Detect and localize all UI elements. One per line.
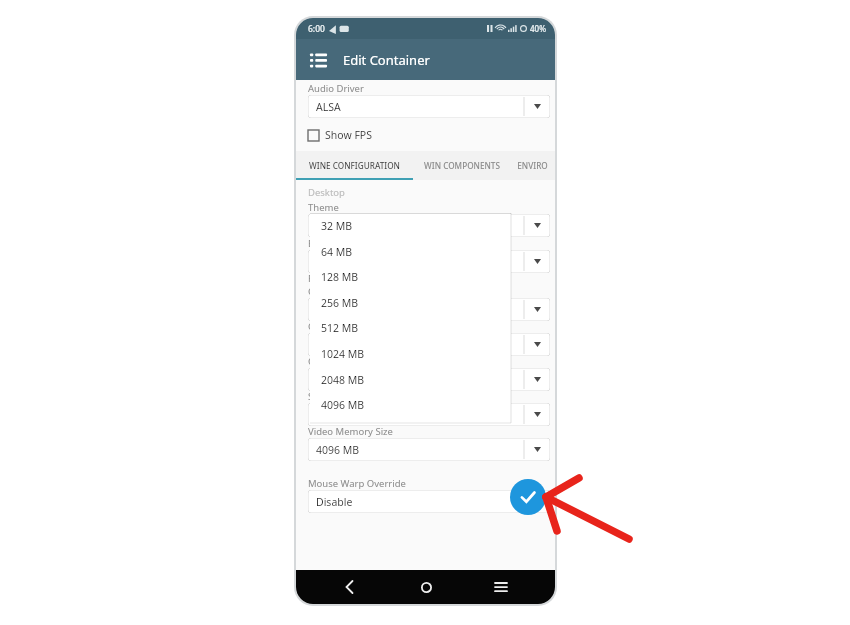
staticText: 1024 MB (321, 347, 365, 361)
staticText: R (308, 272, 314, 285)
button[interactable]: 64 MB (310, 239, 511, 265)
staticText: 40% (530, 23, 546, 34)
staticText: Audio Driver (308, 82, 364, 95)
staticText: Show FPS (325, 128, 372, 142)
staticText: O (308, 355, 316, 368)
button[interactable]: WIN COMPONENTS (413, 151, 510, 180)
staticText: 128 MB (321, 270, 359, 284)
staticText: C (308, 285, 315, 298)
button[interactable] (308, 403, 550, 426)
staticText: 2048 MB (321, 373, 365, 387)
staticText: WINE CONFIGURATION (309, 160, 400, 171)
staticText: Edit Container (343, 51, 430, 69)
staticText: 256 MB (321, 296, 359, 310)
button[interactable] (308, 333, 550, 356)
staticText: WIN COMPONENTS (424, 160, 500, 171)
staticText: 4096 MB (316, 443, 360, 457)
staticText: G (308, 320, 315, 333)
button[interactable]: Open navigation menu (301, 43, 335, 77)
staticText: B (308, 237, 315, 250)
staticText: ENVIRO (517, 160, 548, 171)
button[interactable]: 32 MB (310, 213, 511, 239)
staticText: 512 MB (321, 321, 359, 335)
staticText: Video Memory Size (308, 425, 393, 438)
button[interactable]: Back (329, 570, 371, 604)
button[interactable]: Show FPS (308, 126, 372, 144)
button[interactable]: ALSA (308, 95, 550, 118)
staticText: ALSA (316, 100, 341, 114)
button[interactable] (308, 250, 550, 273)
button[interactable]: 2048 MB (310, 367, 511, 393)
button[interactable]: WINE CONFIGURATION (296, 151, 413, 180)
button[interactable]: 4096 MB (310, 392, 511, 418)
staticText: Disable (316, 495, 353, 509)
staticText: 4096 MB (321, 398, 365, 412)
staticText: Desktop (308, 186, 345, 199)
button[interactable] (308, 214, 550, 237)
button[interactable]: 4096 MB (308, 438, 550, 461)
staticText: 64 MB (321, 245, 353, 259)
button[interactable]: 1024 MB (310, 341, 511, 367)
button[interactable]: Disable (308, 490, 550, 513)
button[interactable]: Save container (510, 479, 546, 515)
button[interactable] (308, 368, 550, 391)
staticText: 32 MB (321, 219, 353, 233)
staticText: Mouse Warp Override (308, 477, 406, 490)
button[interactable]: ENVIRO (510, 151, 555, 180)
button[interactable]: 512 MB (310, 315, 511, 341)
staticText: S (308, 390, 314, 403)
button[interactable]: 128 MB (310, 264, 511, 290)
staticText: 6:00 (308, 23, 325, 35)
staticText: Theme (308, 201, 339, 214)
button[interactable]: Recent apps (480, 570, 522, 604)
button[interactable] (308, 298, 550, 321)
button[interactable]: 256 MB (310, 290, 511, 316)
button[interactable]: Home (405, 570, 447, 604)
